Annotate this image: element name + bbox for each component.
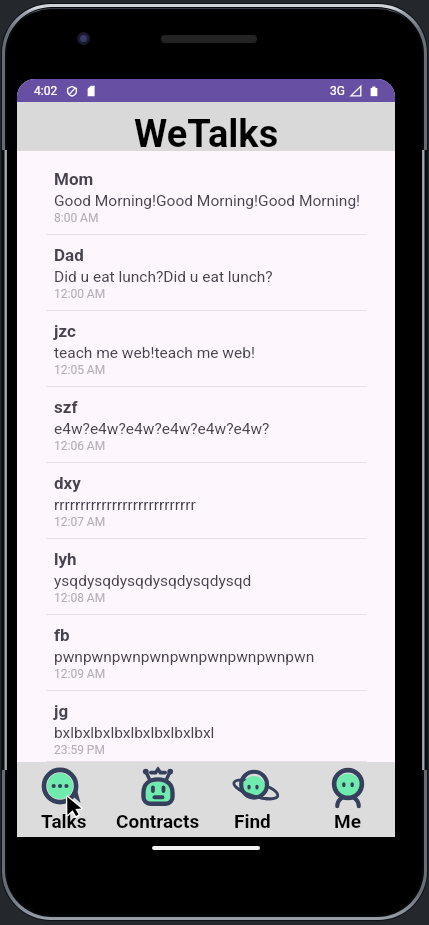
button[interactable]: Find xyxy=(205,762,300,837)
staticText: Did u eat lunch?Did u eat lunch? xyxy=(54,268,273,286)
staticText: Find xyxy=(234,810,271,832)
staticText: ysqdysqdysqdysqdysqdysqd xyxy=(54,572,252,590)
staticText: 4:02 xyxy=(34,84,58,98)
staticText: WeTalks xyxy=(134,112,279,151)
button[interactable]: dxy xyxy=(17,463,395,539)
staticText: szf xyxy=(54,397,78,417)
button[interactable]: Me xyxy=(300,762,395,837)
button[interactable]: fb xyxy=(17,615,395,691)
staticText: jg xyxy=(54,701,69,721)
staticText: 3G xyxy=(330,84,345,98)
staticText: lyh xyxy=(54,549,77,569)
staticText: e4w?e4w?e4w?e4w?e4w?e4w? xyxy=(54,420,270,438)
staticText: dxy xyxy=(54,473,81,493)
button[interactable]: Mom xyxy=(17,159,395,235)
staticText: pwnpwnpwnpwnpwnpwnpwnpwnpwn xyxy=(54,648,315,666)
button[interactable]: Contracts xyxy=(111,762,205,837)
staticText: 12:09 AM xyxy=(54,667,106,681)
staticText: Me xyxy=(334,810,361,832)
staticText: fb xyxy=(54,625,70,645)
staticText: Talks xyxy=(41,810,87,832)
staticText: 12:08 AM xyxy=(54,591,106,605)
staticText: 12:05 AM xyxy=(54,363,106,377)
button[interactable]: jg xyxy=(17,691,395,762)
staticText: 23:59 PM xyxy=(54,743,105,757)
button[interactable]: jzc xyxy=(17,311,395,387)
button[interactable]: Dad xyxy=(17,235,395,311)
staticText: bxlbxlbxlbxlbxlbxlbxlbxl xyxy=(54,724,215,742)
staticText: teach me web!teach me web! xyxy=(54,344,255,362)
staticText: 12:06 AM xyxy=(54,439,106,453)
staticText: 12:00 AM xyxy=(54,287,106,301)
staticText: 12:07 AM xyxy=(54,515,106,529)
staticText: Contracts xyxy=(116,810,200,832)
button[interactable]: Talks xyxy=(17,762,111,837)
staticText: Good Morning!Good Morning!Good Morning! xyxy=(54,192,361,210)
staticText: Dad xyxy=(54,245,84,265)
staticText: rrrrrrrrrrrrrrrrrrrrrrrrrrr xyxy=(54,496,196,514)
staticText: Mom xyxy=(54,169,94,189)
staticText: jzc xyxy=(54,321,76,341)
button[interactable]: szf xyxy=(17,387,395,463)
button[interactable]: lyh xyxy=(17,539,395,615)
staticText: 8:00 AM xyxy=(54,211,99,225)
